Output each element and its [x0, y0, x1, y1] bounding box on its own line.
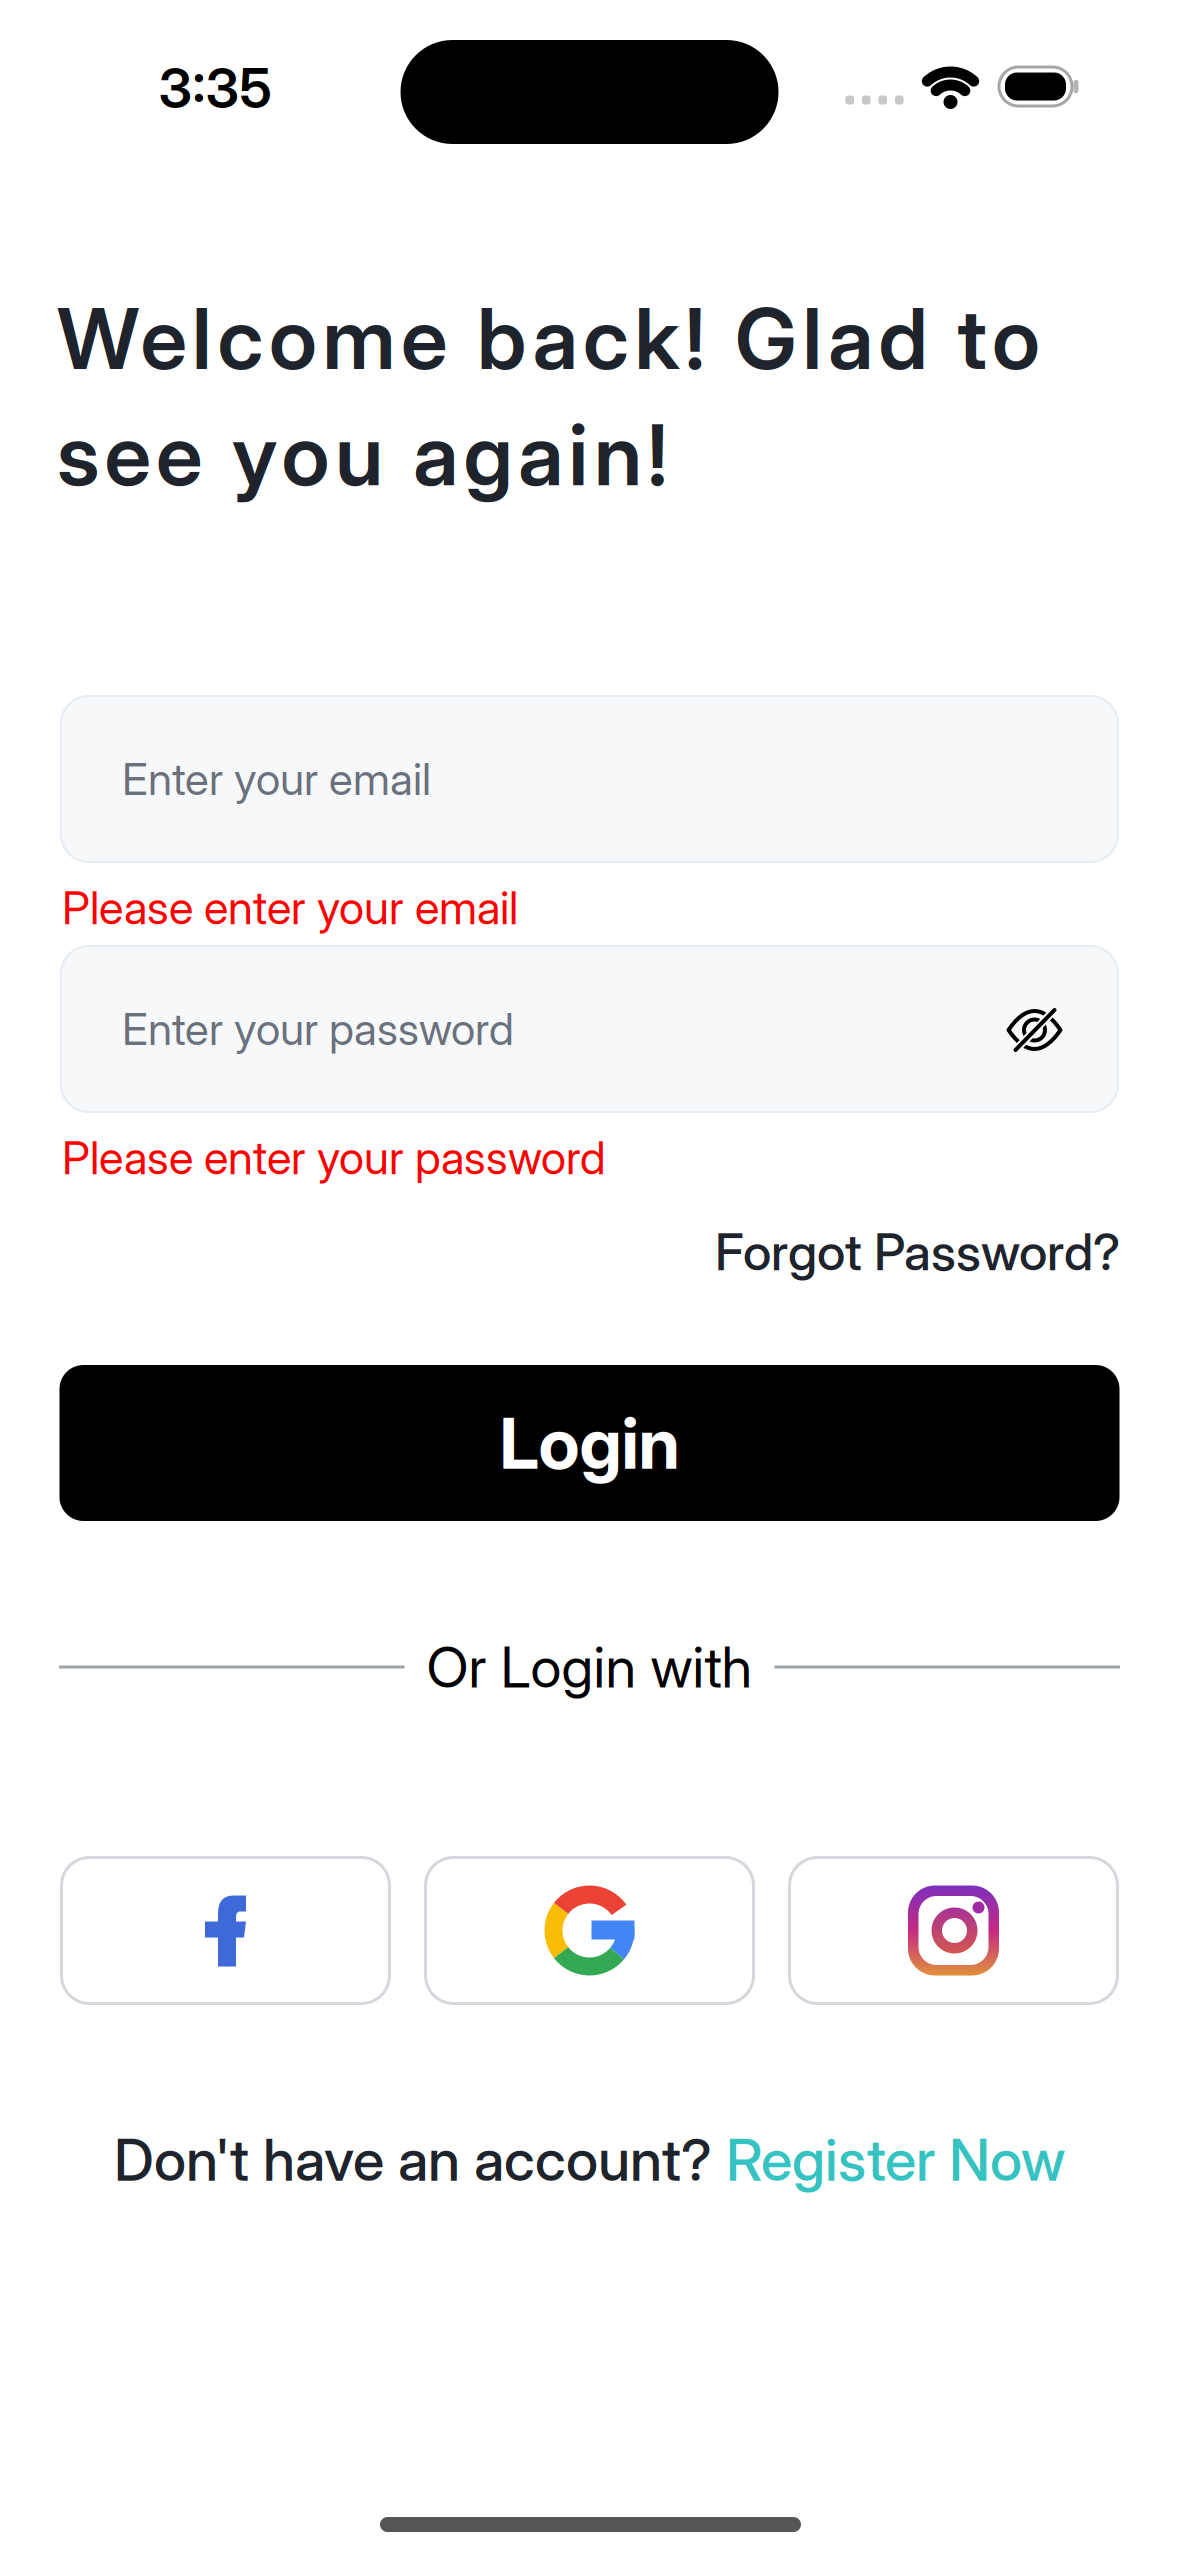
staticText: Please enter your email [62, 881, 518, 934]
button[interactable]: Login [59, 1365, 1119, 1521]
staticText: Please enter your password [62, 1131, 606, 1184]
staticText: Welcome back! Glad to see you again! [57, 289, 1040, 504]
staticText: Forgot Password? [715, 1222, 1120, 1282]
button[interactable]: Login with Facebook [60, 1856, 391, 2005]
button[interactable]: Forgot Password? [715, 1222, 1120, 1282]
staticText: Enter your password [122, 1003, 514, 1055]
button[interactable]: Login with Google [424, 1856, 755, 2005]
button[interactable]: Show password [1006, 1004, 1062, 1056]
staticText: Login [499, 1401, 679, 1485]
button[interactable]: Enter your email [60, 695, 1119, 863]
staticText: 3:35 [158, 56, 271, 120]
staticText: Or Login with [426, 1634, 752, 1700]
staticText: Register Now [726, 2126, 1065, 2194]
staticText: Don't have an account? [114, 2126, 726, 2194]
button[interactable]: Enter your password [60, 945, 1119, 1113]
button[interactable]: Register Now [726, 2126, 1065, 2194]
staticText: Enter your email [122, 753, 431, 805]
button[interactable]: Login with Instagram [788, 1856, 1119, 2005]
